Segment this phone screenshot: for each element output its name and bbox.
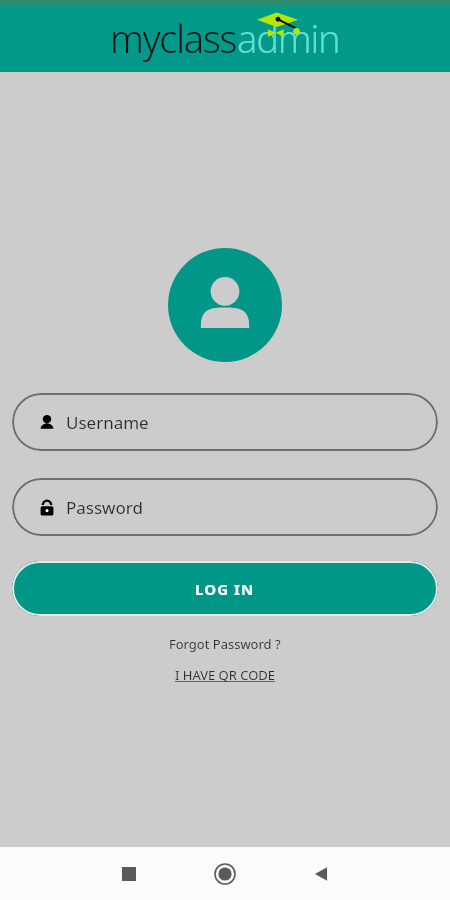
button[interactable]: Username bbox=[12, 393, 438, 451]
staticText: LOG IN bbox=[195, 579, 255, 599]
button[interactable]: I HAVE QR CODE bbox=[167, 664, 284, 686]
button[interactable]: Recents bbox=[81, 847, 177, 900]
staticText: Password bbox=[66, 496, 143, 519]
button[interactable]: Back bbox=[273, 847, 369, 900]
button[interactable]: Password bbox=[12, 478, 438, 536]
staticText: Username bbox=[66, 411, 149, 434]
other: User avatar bbox=[168, 248, 282, 362]
staticText: myclass bbox=[110, 12, 237, 64]
button[interactable]: Forgot Password ? bbox=[161, 632, 289, 656]
button[interactable]: LOG IN bbox=[12, 561, 438, 616]
button[interactable]: Home bbox=[177, 847, 273, 900]
staticText: Forgot Password ? bbox=[169, 635, 281, 653]
staticText: admin bbox=[237, 12, 340, 64]
staticText: I HAVE QR CODE bbox=[175, 666, 276, 684]
